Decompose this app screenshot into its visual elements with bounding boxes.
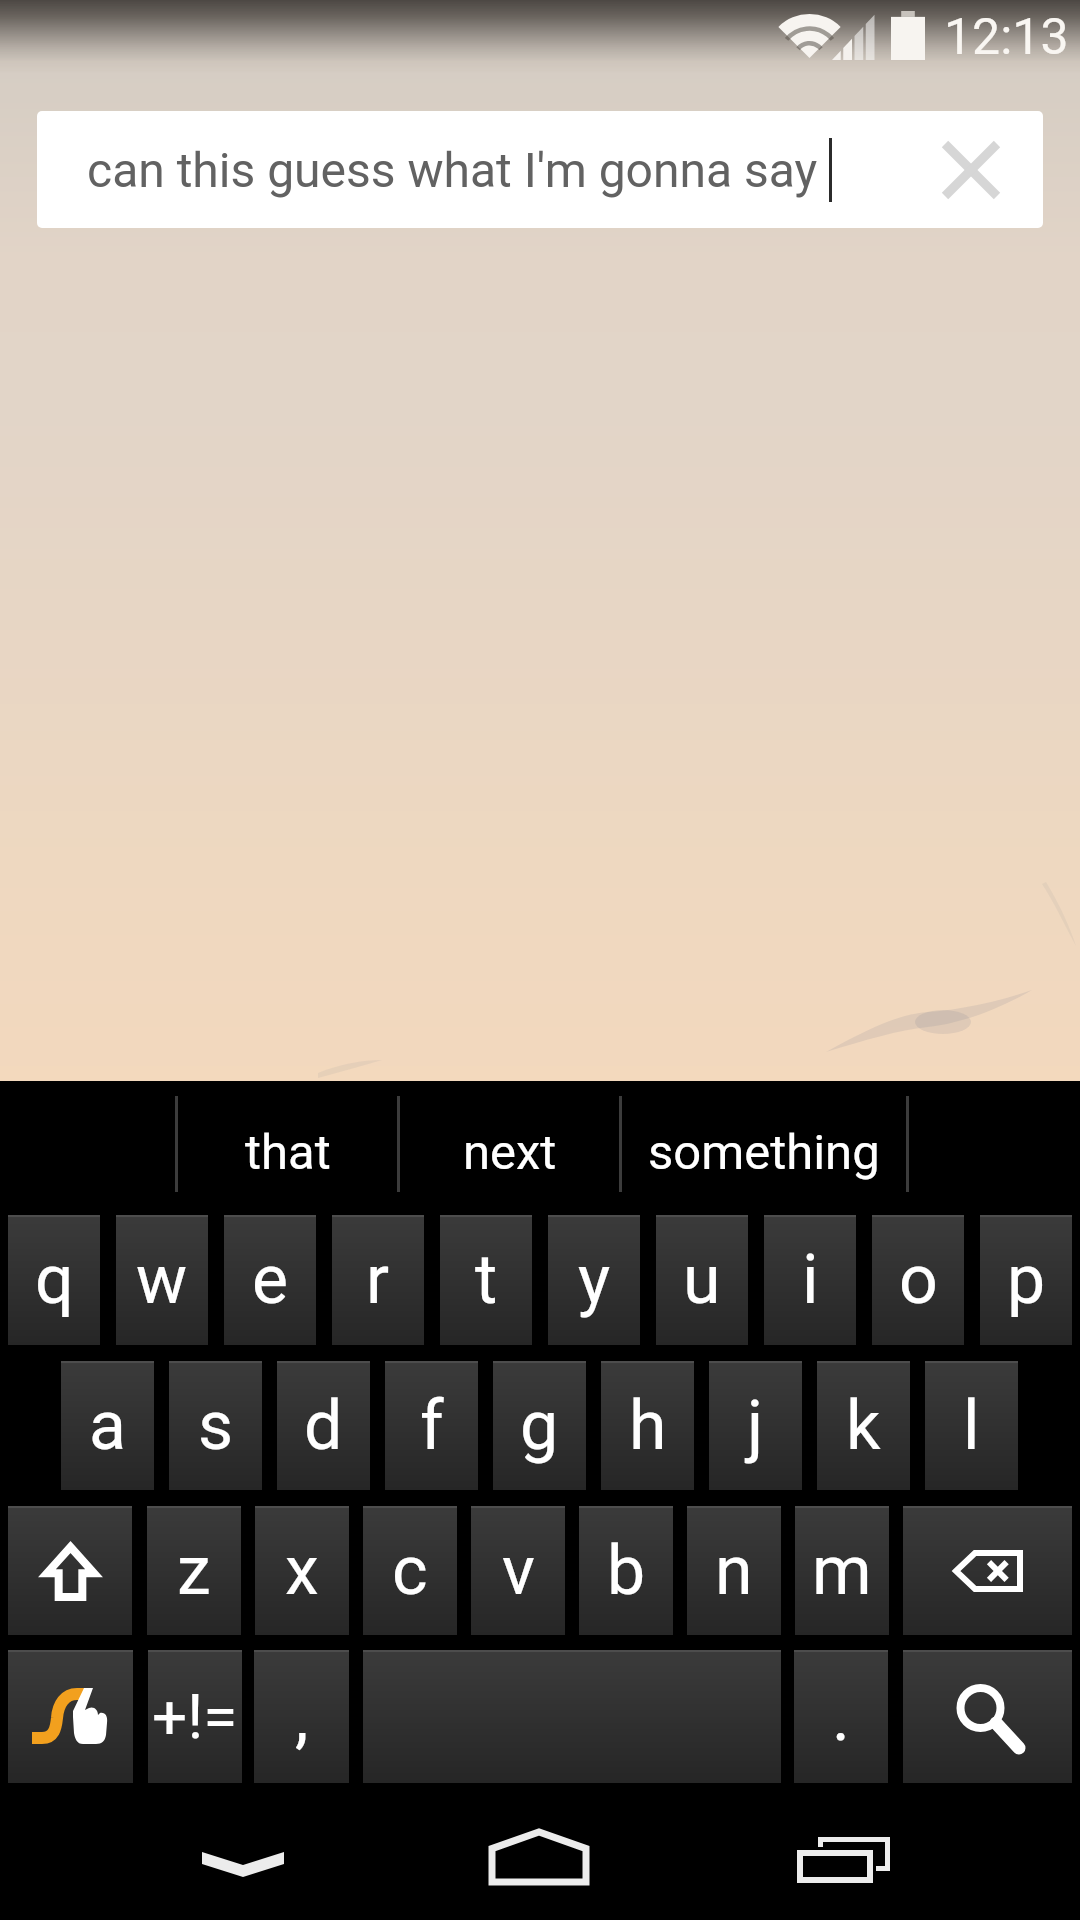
- button[interactable]: l: [925, 1361, 1018, 1490]
- button[interactable]: f: [385, 1361, 478, 1490]
- button[interactable]: Swype gesture input: [8, 1650, 133, 1783]
- button[interactable]: x: [255, 1506, 349, 1635]
- staticText: something: [648, 1124, 880, 1181]
- staticText: m: [812, 1531, 872, 1611]
- staticText: next: [463, 1124, 557, 1181]
- button[interactable]: e: [224, 1215, 316, 1345]
- button[interactable]: that: [178, 1085, 397, 1219]
- button[interactable]: Search: [903, 1650, 1072, 1783]
- staticText: a: [89, 1386, 126, 1466]
- button[interactable]: Shift: [8, 1506, 132, 1635]
- button[interactable]: d: [277, 1361, 370, 1490]
- staticText: y: [578, 1240, 611, 1320]
- staticText: j: [747, 1386, 764, 1466]
- button[interactable]: next: [400, 1085, 619, 1219]
- button[interactable]: j: [709, 1361, 802, 1490]
- staticText: w: [136, 1240, 188, 1320]
- button[interactable]: k: [817, 1361, 910, 1490]
- button[interactable]: +!=: [148, 1650, 242, 1783]
- button[interactable]: Space: [363, 1650, 781, 1783]
- staticText: v: [502, 1531, 535, 1611]
- staticText: r: [366, 1240, 390, 1320]
- button[interactable]: z: [147, 1506, 241, 1635]
- staticText: z: [177, 1531, 211, 1611]
- staticText: that: [245, 1124, 331, 1181]
- button[interactable]: Clear text: [899, 111, 1043, 228]
- button[interactable]: b: [579, 1506, 673, 1635]
- button[interactable]: u: [656, 1215, 748, 1345]
- button[interactable]: s: [169, 1361, 262, 1490]
- button[interactable]: r: [332, 1215, 424, 1345]
- button[interactable]: w: [116, 1215, 208, 1345]
- button[interactable]: ,: [254, 1650, 349, 1783]
- staticText: d: [304, 1386, 343, 1466]
- staticText: can this guess what I'm gonna say: [87, 142, 818, 198]
- button[interactable]: something: [622, 1085, 906, 1219]
- staticText: ,: [295, 1677, 309, 1757]
- button[interactable]: Hide keyboard: [130, 1783, 354, 1920]
- button[interactable]: q: [8, 1215, 100, 1345]
- button[interactable]: i: [764, 1215, 856, 1345]
- button[interactable]: Backspace: [903, 1506, 1072, 1635]
- staticText: g: [520, 1386, 559, 1466]
- staticText: q: [35, 1240, 74, 1320]
- staticText: p: [1007, 1240, 1046, 1320]
- staticText: b: [607, 1531, 646, 1611]
- staticText: t: [475, 1240, 498, 1320]
- button[interactable]: Home: [430, 1783, 650, 1920]
- button[interactable]: h: [601, 1361, 694, 1490]
- button[interactable]: .: [794, 1650, 888, 1783]
- button[interactable]: m: [795, 1506, 889, 1635]
- staticText: i: [802, 1240, 819, 1320]
- button[interactable]: y: [548, 1215, 640, 1345]
- staticText: 12:13: [944, 8, 1069, 67]
- button[interactable]: c: [363, 1506, 457, 1635]
- staticText: n: [715, 1531, 753, 1611]
- staticText: f: [420, 1386, 444, 1466]
- button[interactable]: o: [872, 1215, 964, 1345]
- staticText: h: [629, 1386, 667, 1466]
- button[interactable]: Recent apps: [740, 1783, 960, 1920]
- button[interactable]: g: [493, 1361, 586, 1490]
- staticText: x: [285, 1531, 319, 1611]
- button[interactable]: can this guess what I'm gonna say: [37, 111, 1043, 228]
- button[interactable]: a: [61, 1361, 154, 1490]
- staticText: k: [846, 1386, 881, 1466]
- staticText: u: [683, 1240, 721, 1320]
- staticText: l: [963, 1386, 980, 1466]
- staticText: e: [252, 1240, 289, 1320]
- staticText: +!=: [152, 1680, 238, 1753]
- staticText: o: [899, 1240, 938, 1320]
- button[interactable]: p: [980, 1215, 1072, 1345]
- button[interactable]: v: [471, 1506, 565, 1635]
- button[interactable]: t: [440, 1215, 532, 1345]
- button[interactable]: n: [687, 1506, 781, 1635]
- staticText: s: [198, 1386, 234, 1466]
- staticText: .: [832, 1677, 850, 1757]
- staticText: c: [392, 1531, 428, 1611]
